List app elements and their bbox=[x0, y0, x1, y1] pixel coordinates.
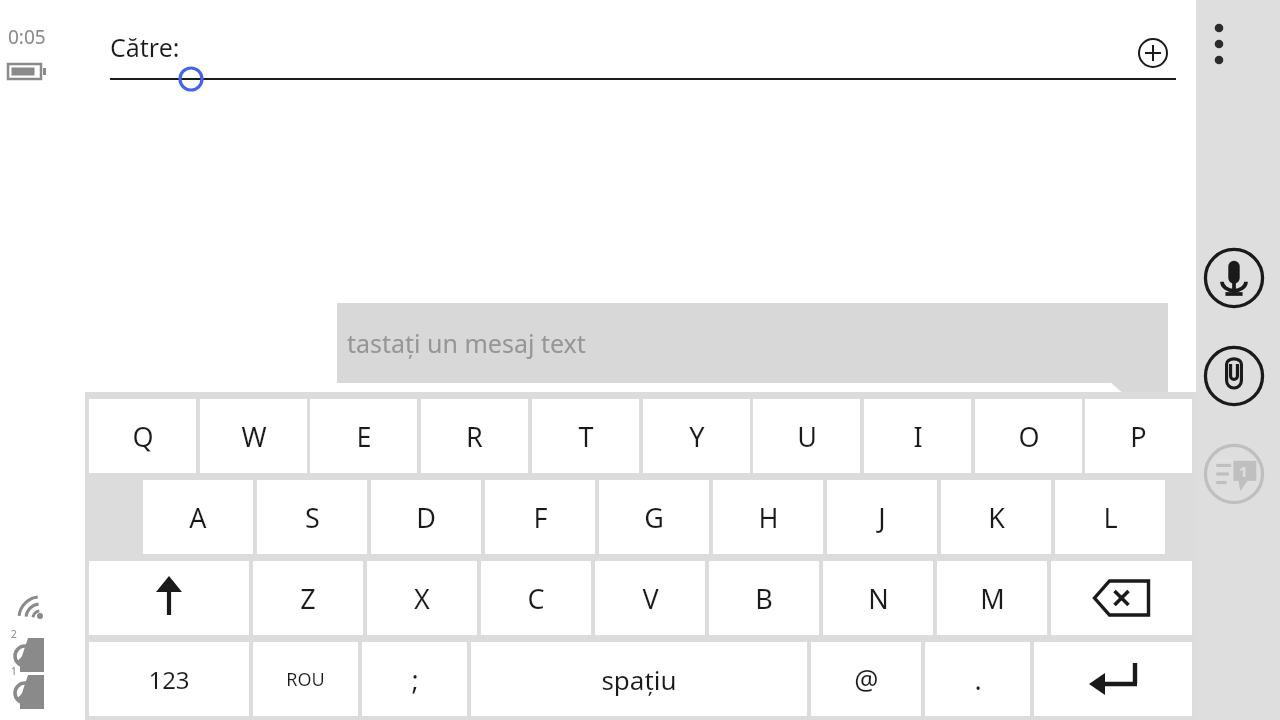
staticText: Q bbox=[132, 418, 154, 455]
button[interactable]: G bbox=[599, 480, 709, 554]
staticText: I bbox=[913, 418, 923, 455]
button[interactable]: Y bbox=[643, 399, 750, 473]
staticText: ROU bbox=[286, 667, 325, 692]
button[interactable]: I bbox=[864, 399, 971, 473]
button[interactable]: C bbox=[481, 561, 591, 635]
staticText: R bbox=[466, 418, 483, 455]
button[interactable]: K bbox=[941, 480, 1051, 554]
staticText: E bbox=[356, 418, 372, 455]
button[interactable]: ROU bbox=[253, 642, 358, 716]
button[interactable]: D bbox=[371, 480, 481, 554]
button[interactable]: Attach bbox=[1192, 330, 1276, 422]
staticText: V bbox=[642, 580, 659, 617]
staticText: @ bbox=[854, 661, 879, 698]
button[interactable]: V bbox=[595, 561, 705, 635]
staticText: U bbox=[797, 418, 817, 455]
button[interactable]: Add recipient bbox=[1130, 30, 1176, 76]
button[interactable]: N bbox=[823, 561, 933, 635]
staticText: 2 bbox=[11, 627, 17, 641]
staticText: P bbox=[1130, 418, 1147, 455]
button[interactable]: P bbox=[1085, 399, 1192, 473]
button[interactable]: X bbox=[367, 561, 477, 635]
staticText: tastați un mesaj text bbox=[347, 326, 586, 360]
staticText: spațiu bbox=[601, 662, 677, 697]
staticText: G bbox=[644, 499, 664, 536]
button[interactable]: @ bbox=[811, 642, 921, 716]
button[interactable]: F bbox=[485, 480, 595, 554]
staticText: T bbox=[578, 418, 594, 455]
button[interactable]: ; bbox=[362, 642, 467, 716]
button[interactable]: spațiu bbox=[471, 642, 807, 716]
button[interactable] bbox=[89, 561, 249, 635]
staticText: 0:05 bbox=[8, 24, 46, 50]
button[interactable]: M bbox=[937, 561, 1047, 635]
button[interactable]: L bbox=[1055, 480, 1165, 554]
staticText: B bbox=[755, 580, 773, 617]
staticText: N bbox=[868, 580, 889, 617]
button[interactable]: W bbox=[200, 399, 307, 473]
button[interactable]: More options bbox=[1200, 10, 1238, 78]
staticText: D bbox=[416, 499, 436, 536]
staticText: S bbox=[305, 499, 320, 536]
staticText: C bbox=[527, 580, 545, 617]
button[interactable]: A bbox=[143, 480, 253, 554]
button[interactable]: 123 bbox=[89, 642, 249, 716]
staticText: X bbox=[414, 580, 430, 617]
staticText: M bbox=[980, 580, 1005, 617]
staticText: L bbox=[1103, 499, 1118, 536]
staticText: ; bbox=[411, 661, 419, 698]
button[interactable]: O bbox=[975, 399, 1082, 473]
button[interactable]: J bbox=[827, 480, 937, 554]
staticText: Z bbox=[300, 580, 316, 617]
staticText: . bbox=[974, 661, 982, 698]
button[interactable]: tastați un mesaj text bbox=[337, 303, 1168, 383]
staticText: K bbox=[988, 499, 1005, 536]
staticText: Către: bbox=[110, 30, 180, 64]
staticText: 1 bbox=[1239, 461, 1248, 481]
button[interactable]: Q bbox=[89, 399, 196, 473]
button[interactable]: Backspace bbox=[1051, 561, 1192, 635]
staticText: 1 bbox=[11, 664, 17, 678]
staticText: Y bbox=[689, 418, 705, 455]
staticText: F bbox=[533, 499, 548, 536]
staticText: J bbox=[878, 499, 886, 536]
button[interactable]: B bbox=[709, 561, 819, 635]
staticText: A bbox=[189, 499, 207, 536]
button[interactable]: Voice input bbox=[1192, 232, 1276, 324]
button[interactable]: T bbox=[532, 399, 639, 473]
button[interactable]: E bbox=[310, 399, 417, 473]
button[interactable]: Send bbox=[1192, 428, 1276, 520]
button[interactable]: Enter bbox=[1034, 642, 1192, 716]
staticText: H bbox=[758, 499, 779, 536]
button[interactable]: . bbox=[925, 642, 1030, 716]
button[interactable]: H bbox=[713, 480, 823, 554]
button[interactable]: U bbox=[753, 399, 860, 473]
staticText: W bbox=[241, 418, 267, 455]
staticText: O bbox=[1018, 418, 1040, 455]
staticText: 123 bbox=[148, 663, 190, 696]
button[interactable]: Z bbox=[253, 561, 363, 635]
button[interactable]: S bbox=[257, 480, 367, 554]
button[interactable]: R bbox=[421, 399, 528, 473]
